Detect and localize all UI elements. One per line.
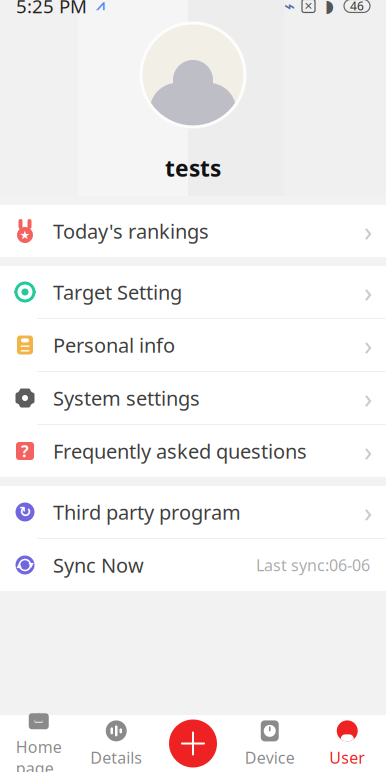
button[interactable]: Personal info bbox=[0, 319, 386, 371]
button[interactable]: Device bbox=[231, 715, 308, 771]
button[interactable]: ▲ bbox=[0, 539, 386, 591]
staticText: ▲ bbox=[34, 709, 43, 723]
staticText: › bbox=[364, 327, 372, 363]
button[interactable]: ↻ bbox=[0, 486, 386, 538]
staticText: 5:25 PM bbox=[16, 0, 87, 18]
button[interactable]: ▲ bbox=[0, 715, 77, 771]
button[interactable]: ? bbox=[0, 425, 386, 477]
staticText: ◗ bbox=[325, 0, 334, 16]
staticText: ⌁ bbox=[284, 0, 295, 17]
staticText: Sync Now bbox=[53, 552, 144, 578]
staticText: › bbox=[364, 274, 372, 310]
staticText: Third party program bbox=[53, 499, 241, 525]
staticText: User bbox=[329, 747, 365, 768]
button[interactable]: ★ bbox=[0, 205, 386, 257]
staticText: ▲ bbox=[16, 561, 21, 569]
staticText: ▼ bbox=[28, 561, 33, 569]
staticText: System settings bbox=[53, 385, 200, 411]
staticText: › bbox=[364, 213, 372, 249]
staticText: ? bbox=[21, 440, 29, 462]
button[interactable]: Details bbox=[77, 715, 155, 771]
staticText: Details bbox=[90, 747, 142, 768]
button[interactable]: System settings bbox=[0, 372, 386, 424]
staticText: Device bbox=[245, 747, 295, 768]
button[interactable]: User bbox=[308, 715, 386, 771]
button[interactable]: Target Setting bbox=[0, 266, 386, 318]
staticText: tests bbox=[165, 153, 221, 183]
staticText: ★ bbox=[19, 228, 30, 242]
staticText: Personal info bbox=[53, 332, 175, 358]
staticText: Frequently asked questions bbox=[53, 438, 307, 464]
staticText: ✕ bbox=[304, 0, 313, 12]
staticText: ⩘ bbox=[96, 0, 104, 13]
staticText: ↻ bbox=[19, 504, 31, 520]
button[interactable]: Add bbox=[165, 715, 221, 771]
staticText: › bbox=[364, 433, 372, 469]
staticText: Today's rankings bbox=[53, 218, 209, 244]
staticText: Home page bbox=[16, 736, 62, 772]
staticText: › bbox=[364, 494, 372, 530]
staticText: Target Setting bbox=[53, 279, 182, 305]
staticText: › bbox=[364, 380, 372, 416]
staticText: Last sync:06-06 bbox=[256, 554, 370, 576]
staticText: 46 bbox=[350, 0, 364, 14]
